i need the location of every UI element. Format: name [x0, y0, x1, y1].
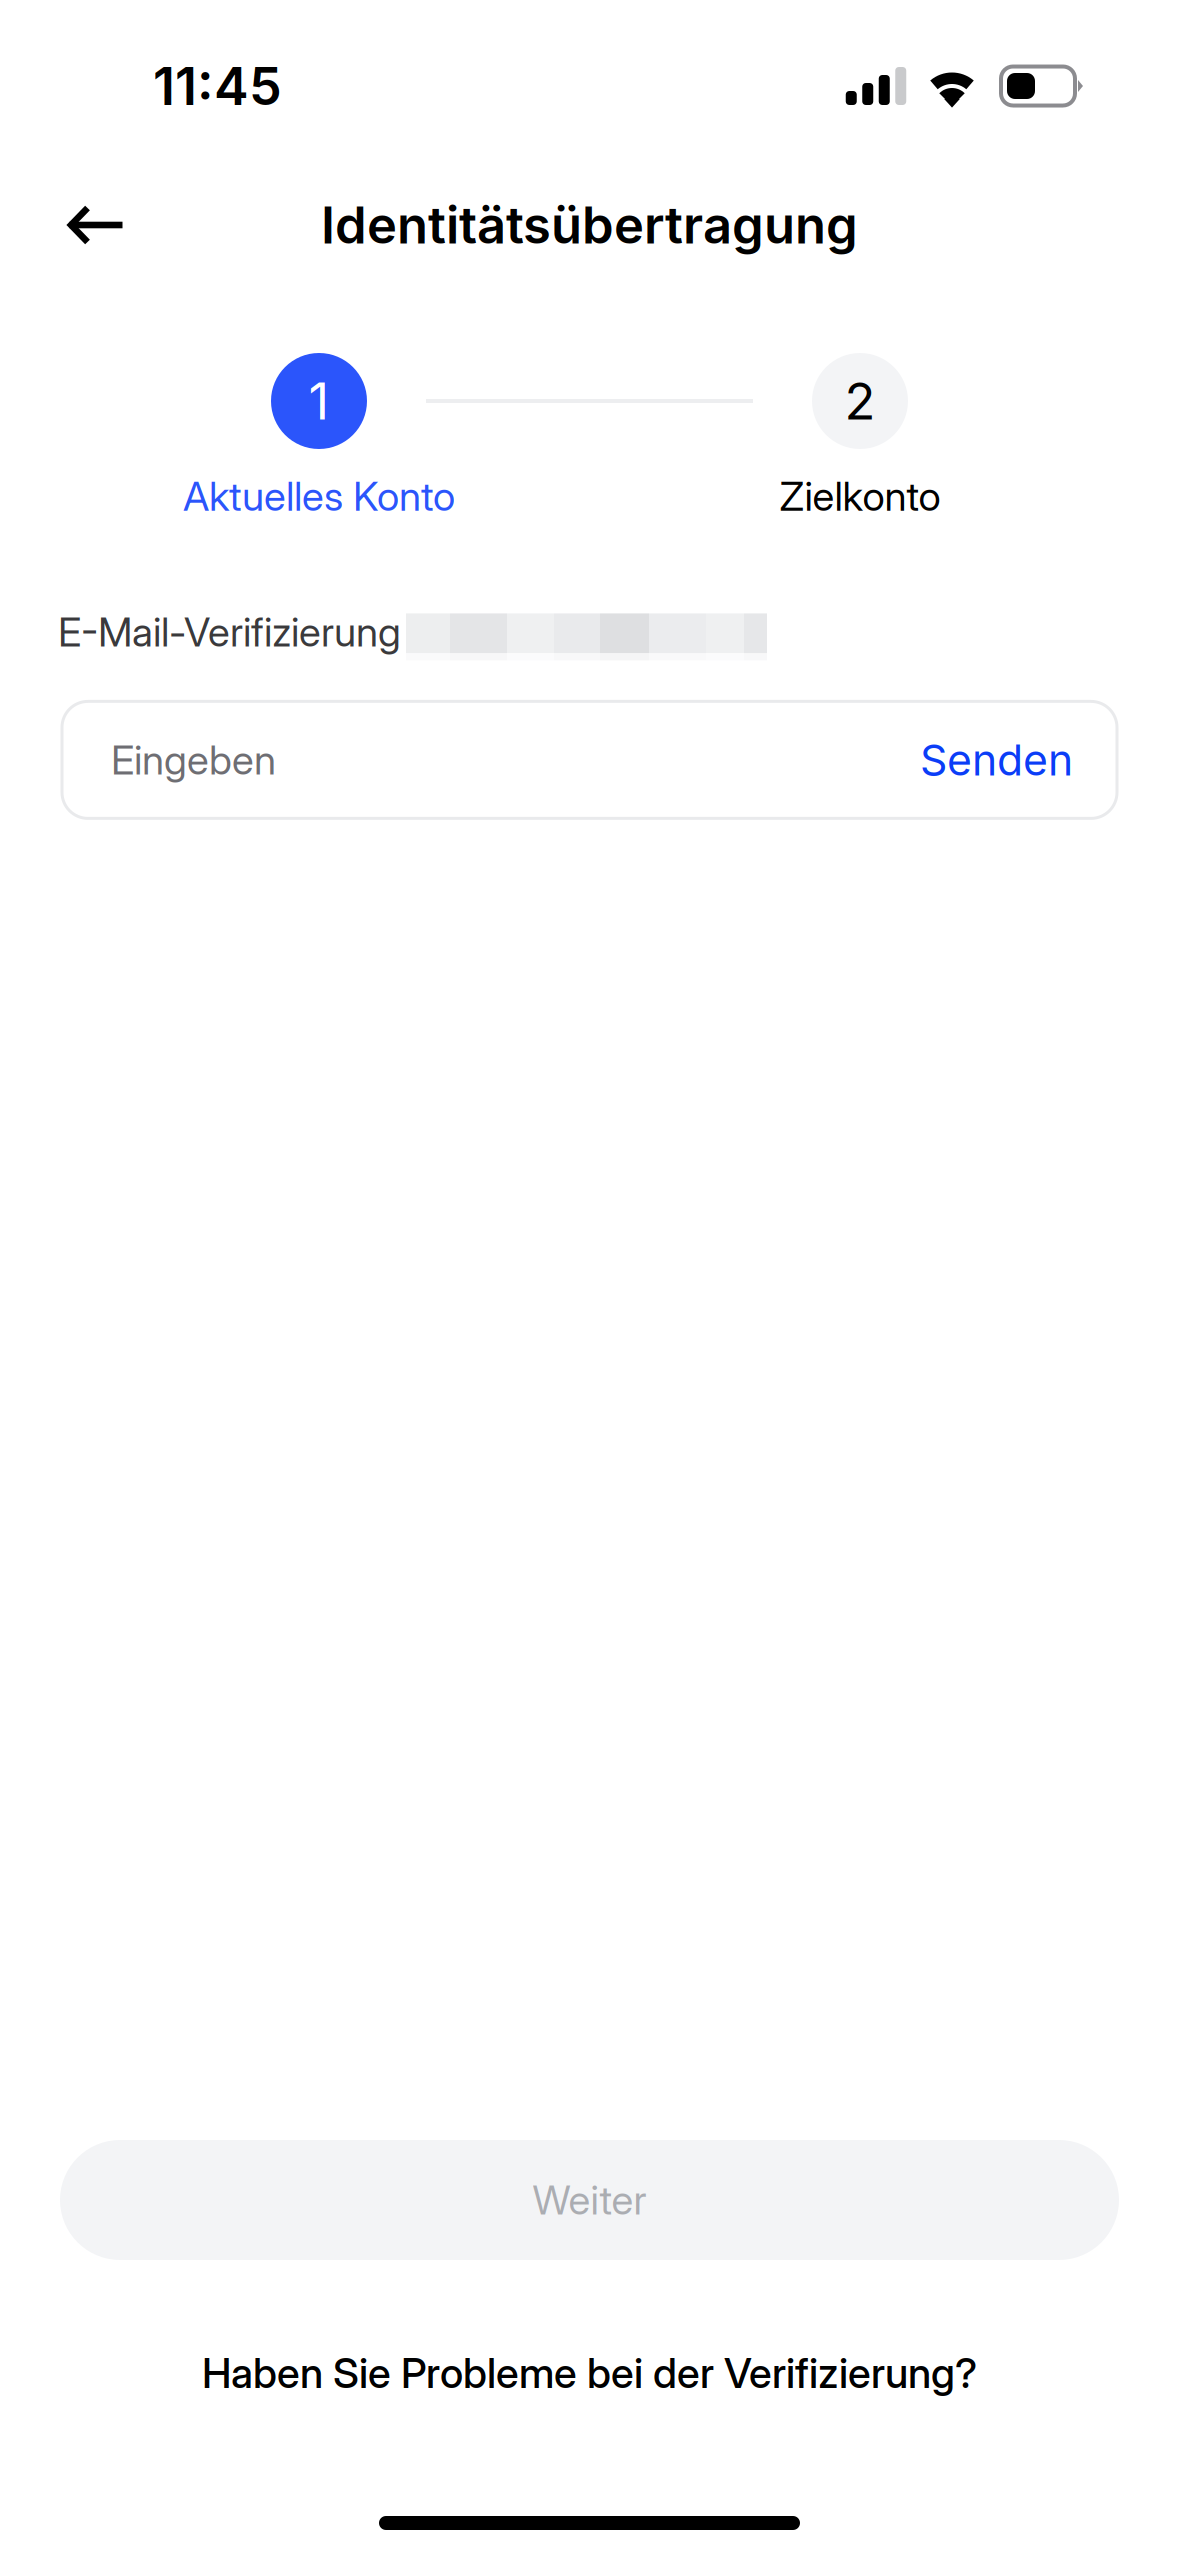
staticText: Aktuelles Konto [183, 472, 455, 520]
staticText: Senden [920, 734, 1073, 786]
button[interactable]: Aktuelles Konto [48, 472, 589, 520]
staticText: Zielkonto [779, 472, 940, 520]
staticText: 2 [844, 370, 875, 432]
button[interactable]: Code eingeben [62, 701, 880, 818]
staticText: 11:45 [153, 54, 282, 117]
staticText: Eingeben [111, 736, 276, 784]
staticText: Identitätsübertragung [321, 194, 858, 256]
button[interactable]: Haben Sie Probleme bei der Verifizierung… [202, 2348, 977, 2398]
button[interactable]: Zurück [31, 180, 161, 270]
button[interactable]: Senden [880, 701, 1117, 818]
staticText: Weiter [532, 2176, 646, 2224]
button[interactable]: Zielkonto [589, 472, 1130, 520]
staticText: Haben Sie Probleme bei der Verifizierung… [202, 2348, 977, 2398]
staticText: E-Mail-Verifizierung [58, 608, 401, 656]
button[interactable]: Weiter [60, 2140, 1119, 2260]
staticText: 1 [308, 370, 329, 432]
